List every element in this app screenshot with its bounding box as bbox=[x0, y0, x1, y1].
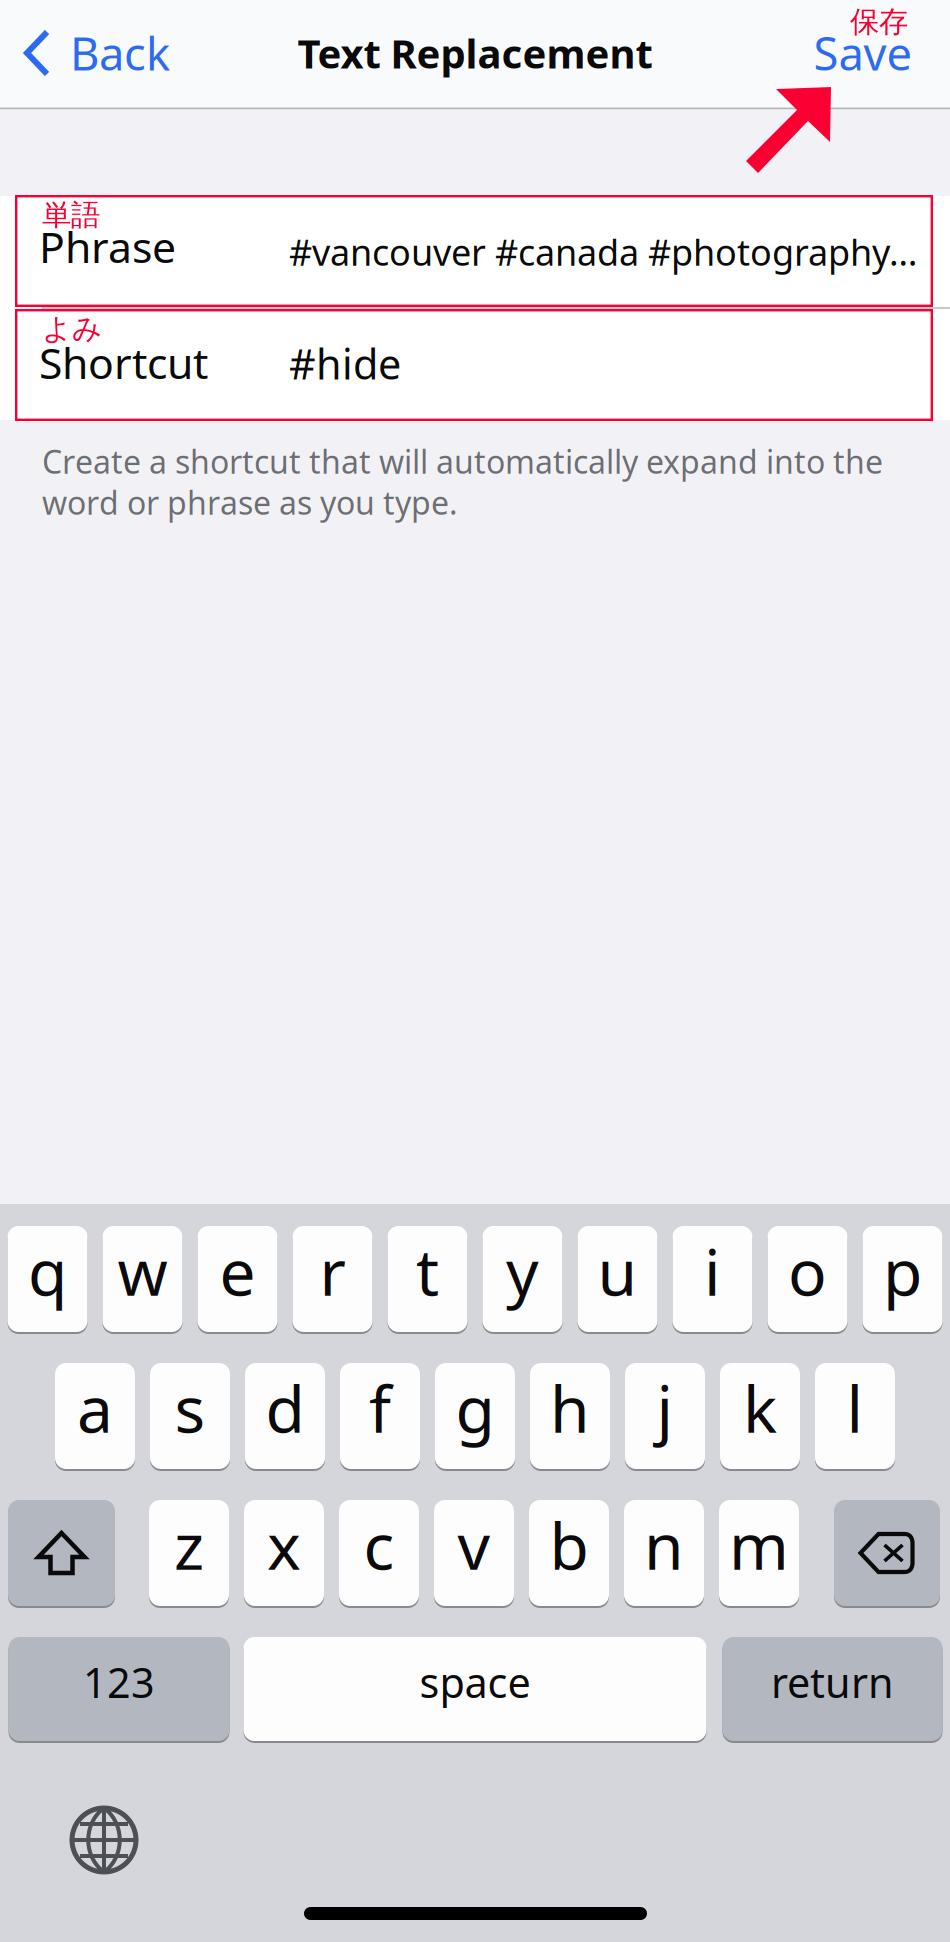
button[interactable]: q bbox=[7, 1225, 87, 1333]
staticText: e bbox=[219, 1228, 255, 1313]
button[interactable]: p bbox=[862, 1225, 942, 1333]
staticText: s bbox=[174, 1365, 205, 1450]
staticText: #vancouver #canada #photography… bbox=[289, 228, 917, 276]
staticText: d bbox=[265, 1365, 304, 1450]
staticText: #hide bbox=[289, 336, 401, 391]
staticText: r bbox=[319, 1228, 345, 1313]
button[interactable]: j bbox=[625, 1362, 705, 1470]
button[interactable]: Save bbox=[798, 0, 928, 106]
button[interactable]: x bbox=[244, 1499, 324, 1607]
staticText: Create a shortcut that will automaticall… bbox=[42, 440, 883, 482]
staticText: x bbox=[267, 1502, 301, 1587]
button[interactable]: Phrase bbox=[0, 196, 950, 307]
staticText: i bbox=[704, 1228, 721, 1313]
staticText: Back bbox=[70, 23, 170, 83]
button[interactable]: s bbox=[150, 1362, 230, 1470]
button[interactable]: 123 bbox=[8, 1636, 229, 1742]
button[interactable]: space bbox=[243, 1636, 706, 1742]
staticText: k bbox=[743, 1365, 777, 1450]
button[interactable]: t bbox=[387, 1225, 467, 1333]
staticText: Save bbox=[813, 23, 912, 83]
button[interactable]: Back bbox=[0, 0, 188, 106]
staticText: Phrase bbox=[39, 218, 176, 275]
staticText: m bbox=[729, 1502, 789, 1587]
button[interactable]: Shortcut bbox=[0, 309, 950, 420]
button[interactable]: y bbox=[482, 1225, 562, 1333]
button[interactable]: e bbox=[197, 1225, 277, 1333]
button[interactable]: u bbox=[577, 1225, 657, 1333]
staticText: よみ bbox=[42, 311, 102, 347]
staticText: 保存 bbox=[850, 4, 908, 40]
button[interactable]: d bbox=[245, 1362, 325, 1470]
staticText: 123 bbox=[83, 1655, 155, 1709]
button[interactable]: k bbox=[720, 1362, 800, 1470]
staticText: b bbox=[549, 1502, 588, 1587]
staticText: v bbox=[457, 1502, 490, 1587]
staticText: u bbox=[597, 1228, 637, 1313]
staticText: space bbox=[419, 1655, 530, 1709]
button[interactable]: Next keyboard bbox=[70, 1806, 138, 1874]
staticText: w bbox=[117, 1228, 167, 1313]
staticText: Shortcut bbox=[39, 334, 208, 391]
staticText: g bbox=[455, 1365, 494, 1450]
button[interactable]: h bbox=[530, 1362, 610, 1470]
staticText: return bbox=[771, 1655, 894, 1709]
staticText: f bbox=[369, 1365, 391, 1450]
staticText: l bbox=[846, 1365, 863, 1450]
staticText: o bbox=[788, 1228, 827, 1313]
button[interactable]: n bbox=[624, 1499, 704, 1607]
button[interactable]: m bbox=[719, 1499, 799, 1607]
staticText: t bbox=[416, 1228, 439, 1313]
button[interactable]: v bbox=[434, 1499, 514, 1607]
button[interactable]: r bbox=[292, 1225, 372, 1333]
button[interactable]: Shift bbox=[8, 1499, 115, 1607]
button[interactable]: b bbox=[529, 1499, 609, 1607]
button[interactable]: g bbox=[435, 1362, 515, 1470]
staticText: 単語 bbox=[42, 197, 100, 233]
button[interactable]: l bbox=[815, 1362, 895, 1470]
button[interactable]: a bbox=[55, 1362, 135, 1470]
button[interactable]: i bbox=[672, 1225, 752, 1333]
staticText: c bbox=[363, 1502, 394, 1587]
staticText: word or phrase as you type. bbox=[42, 481, 458, 523]
staticText: p bbox=[883, 1228, 922, 1313]
staticText: z bbox=[174, 1502, 204, 1587]
button[interactable]: o bbox=[767, 1225, 847, 1333]
button[interactable]: c bbox=[339, 1499, 419, 1607]
staticText: h bbox=[550, 1365, 590, 1450]
button[interactable]: Delete bbox=[834, 1499, 940, 1607]
staticText: q bbox=[28, 1228, 67, 1313]
button[interactable]: f bbox=[340, 1362, 420, 1470]
staticText: n bbox=[644, 1502, 684, 1587]
button[interactable]: z bbox=[149, 1499, 229, 1607]
staticText: Text Replacement bbox=[297, 26, 652, 79]
staticText: j bbox=[656, 1365, 673, 1450]
staticText: a bbox=[77, 1365, 113, 1450]
staticText: y bbox=[506, 1228, 539, 1313]
button[interactable]: w bbox=[102, 1225, 182, 1333]
button[interactable]: return bbox=[722, 1636, 942, 1742]
